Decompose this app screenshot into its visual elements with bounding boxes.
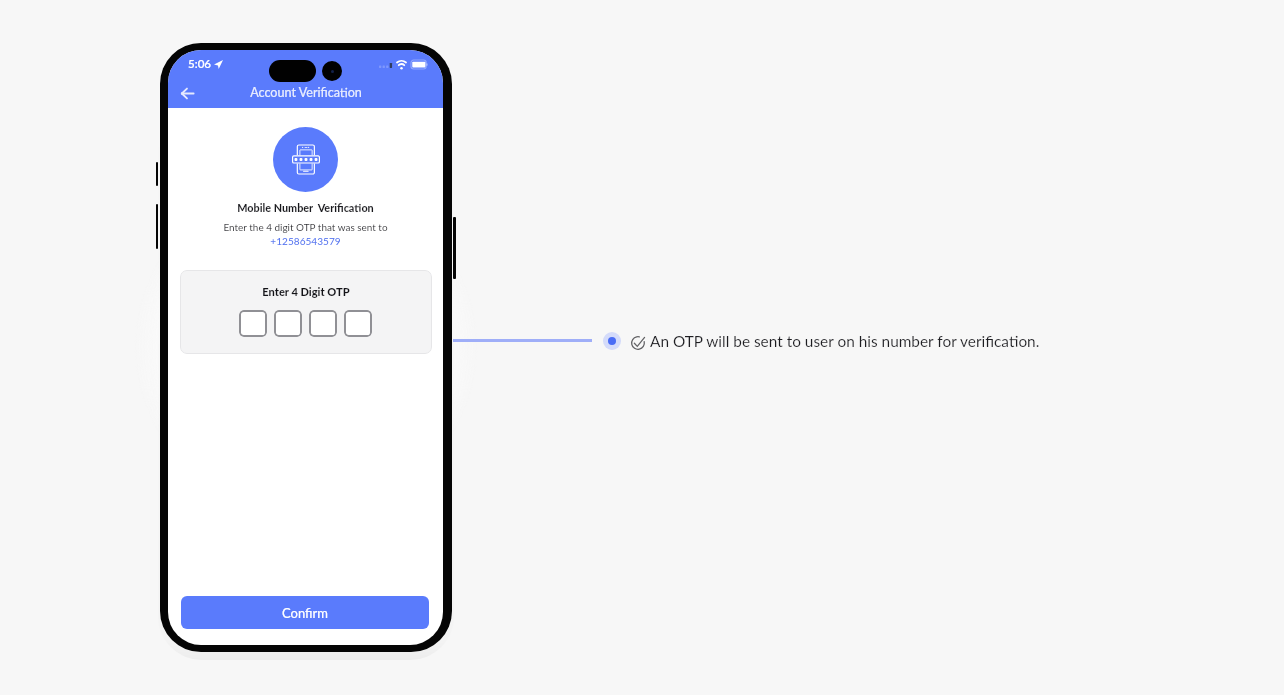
button[interactable]: Back — [176, 82, 199, 105]
button[interactable]: Confirm — [181, 596, 429, 629]
button[interactable]: OTP digit — [274, 310, 302, 337]
button[interactable]: OTP digit — [309, 310, 337, 337]
staticText: +12586543579 — [270, 235, 341, 247]
staticText: Confirm — [282, 605, 328, 621]
staticText: An OTP will be sent to user on his numbe… — [650, 332, 1040, 350]
other: Verified — [631, 336, 645, 350]
button[interactable]: OTP digit — [239, 310, 267, 337]
button[interactable]: OTP digit — [344, 310, 372, 337]
staticText: Enter 4 Digit OTP — [262, 285, 350, 298]
staticText: Enter the 4 digit OTP that was sent to — [223, 221, 388, 233]
staticText: Account Verification — [250, 85, 362, 100]
staticText: Mobile Number Verification — [237, 201, 374, 214]
staticText: 5:06 — [188, 57, 212, 71]
